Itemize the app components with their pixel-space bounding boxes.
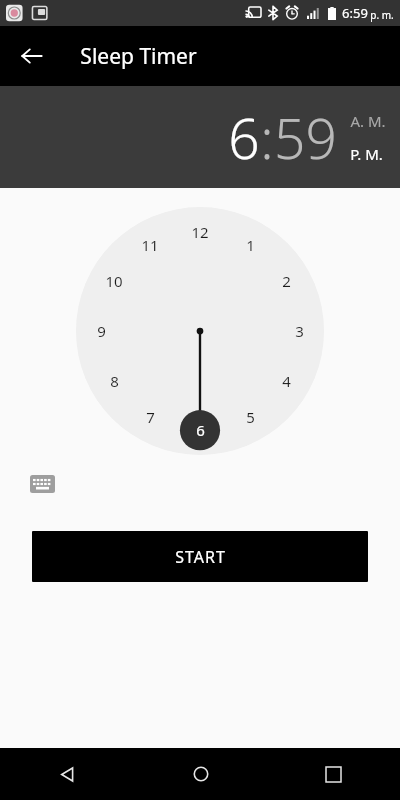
button[interactable]: 59 xyxy=(274,100,337,175)
staticText: 6:59 xyxy=(342,4,368,22)
button[interactable]: 5 xyxy=(236,406,264,428)
button[interactable]: 12 xyxy=(186,221,214,243)
button[interactable]: A. M. xyxy=(350,111,386,131)
button[interactable]: Recent apps xyxy=(267,748,400,800)
button[interactable]: 3 xyxy=(285,320,313,342)
button[interactable]: 1 xyxy=(236,234,264,256)
staticText: : xyxy=(260,100,274,175)
button[interactable]: 6 xyxy=(228,100,260,175)
staticText: 2 xyxy=(282,271,291,291)
button[interactable]: 9 xyxy=(87,320,115,342)
staticText: 3 xyxy=(295,321,304,341)
staticText: 10 xyxy=(105,271,123,291)
staticText: 8 xyxy=(110,371,119,391)
button[interactable]: 4 xyxy=(272,370,300,392)
staticText: 7 xyxy=(146,407,155,427)
button[interactable]: 7 xyxy=(136,406,164,428)
button[interactable]: 8 xyxy=(100,370,128,392)
button[interactable]: 2 xyxy=(272,270,300,292)
staticText: 9 xyxy=(97,321,106,341)
button[interactable]: 10 xyxy=(100,270,128,292)
staticText: START xyxy=(175,546,226,568)
button[interactable]: START xyxy=(32,531,368,582)
button[interactable]: 11 xyxy=(136,234,164,256)
button[interactable]: Switch to text input xyxy=(26,470,58,498)
staticText: Sleep Timer xyxy=(80,42,197,71)
staticText: 6 xyxy=(196,420,205,440)
staticText: 5 xyxy=(246,407,255,427)
staticText: A. M. xyxy=(350,111,386,131)
button[interactable]: 6 xyxy=(186,419,214,441)
staticText: 4 xyxy=(282,371,291,391)
button[interactable]: Back xyxy=(8,32,56,80)
staticText: 1 xyxy=(246,235,255,255)
staticText: P. M. xyxy=(350,144,383,164)
staticText: 12 xyxy=(191,222,209,242)
staticText: p. m. xyxy=(370,8,394,22)
button[interactable]: Back xyxy=(0,748,134,800)
button[interactable]: Home xyxy=(134,748,267,800)
button[interactable]: P. M. xyxy=(350,144,383,164)
button[interactable]: 1 xyxy=(76,207,324,455)
staticText: 11 xyxy=(141,235,159,255)
